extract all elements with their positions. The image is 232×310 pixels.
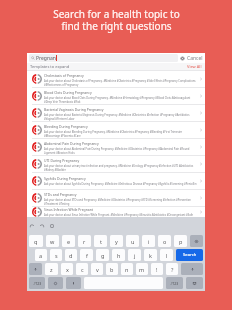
staticText: w [50, 238, 55, 245]
button[interactable]: Emoji [48, 277, 63, 289]
button[interactable]: v [91, 263, 103, 275]
button[interactable]: t [94, 235, 107, 247]
staticText: f [86, 252, 88, 259]
staticText: p [179, 238, 183, 245]
staticText: ? [171, 266, 174, 273]
staticText: Ask your doctor about Bleeding During Pr… [44, 130, 197, 137]
button[interactable]: d [65, 249, 77, 261]
staticText: Ask your doctor about Blood Clots During… [44, 96, 197, 103]
staticText: Ask your doctor about Syphilis During Pr… [44, 182, 197, 186]
staticText: z [50, 266, 53, 273]
button[interactable]: Undo [29, 223, 35, 229]
button[interactable]: Syphilis During Pregnancy [27, 173, 205, 190]
staticText: ! [156, 266, 158, 273]
button[interactable]: b [106, 263, 118, 275]
button[interactable]: Cholestasis of Pregnancy [27, 71, 205, 88]
staticText: Ask your doctor about STDs and Pregnancy… [44, 198, 197, 205]
button[interactable]: Search [176, 249, 203, 261]
button[interactable]: s [50, 249, 62, 261]
staticText: e [67, 238, 71, 245]
button[interactable]: STDs and Pregnancy [27, 190, 205, 207]
button[interactable]: Numbers [166, 277, 183, 289]
button[interactable]: j [128, 249, 141, 261]
button[interactable]: q [29, 235, 43, 247]
staticText: r [83, 238, 86, 245]
staticText: y [115, 238, 118, 245]
staticText: Templates to expand [30, 64, 70, 69]
staticText: Ask your doctor about Bacterial Vaginosi… [44, 113, 197, 120]
button[interactable]: x [61, 263, 73, 275]
staticText: m [139, 266, 145, 273]
staticText: o [163, 238, 167, 245]
button[interactable]: z [45, 263, 58, 275]
button[interactable]: Clear search [180, 56, 185, 61]
staticText: View All [187, 64, 202, 69]
staticText: j [134, 252, 136, 259]
button[interactable]: Backspace [190, 235, 203, 247]
button[interactable]: Redo [39, 223, 45, 229]
staticText: STDs and Pregnancy [44, 192, 77, 197]
button[interactable]: g [96, 249, 109, 261]
staticText: k [149, 252, 152, 259]
button[interactable]: m [136, 263, 148, 275]
staticText: t [100, 238, 102, 245]
staticText: Cholestasis of Pregnancy [44, 73, 84, 78]
staticText: Ask your doctor about Abdominal Pain Dur… [44, 147, 197, 154]
button[interactable]: n [121, 263, 133, 275]
button[interactable]: w [46, 235, 59, 247]
button[interactable]: UTI During Pregnancy [27, 156, 205, 173]
button[interactable]: ? [166, 263, 178, 275]
button[interactable]: l [160, 249, 173, 261]
button[interactable]: Sinus Infection While Pregnant [27, 207, 205, 217]
staticText: Syphilis During Pregnancy [44, 176, 86, 181]
staticText: l [166, 252, 168, 259]
staticText: u [131, 238, 135, 245]
staticText: v [96, 266, 99, 273]
button[interactable]: a [35, 249, 47, 261]
button[interactable]: p [174, 235, 187, 247]
button[interactable]: Voice input [66, 277, 81, 289]
button[interactable]: y [110, 235, 123, 247]
staticText: h [117, 252, 121, 259]
staticText: Search [183, 252, 197, 258]
button[interactable]: Shift [181, 263, 203, 275]
staticText: .?123 [33, 281, 42, 286]
button[interactable]: Paste [49, 223, 55, 229]
button[interactable]: Bleeding During Pregnancy [27, 122, 205, 139]
staticText: b [110, 266, 114, 273]
button[interactable]: Hide keyboard [186, 277, 203, 289]
button[interactable]: Shift [29, 263, 42, 275]
staticText: Abdominal Pain During Pregnancy [44, 141, 99, 146]
staticText: n [125, 266, 129, 273]
staticText: c [81, 266, 84, 273]
button[interactable]: Bacterial Vaginosis During Pregnancy [27, 105, 205, 122]
button[interactable]: h [112, 249, 125, 261]
button[interactable]: Cancel [187, 55, 203, 62]
staticText: Search for a health topic to find the ri… [53, 7, 180, 33]
button[interactable]: e [62, 235, 75, 247]
button[interactable]: i [142, 235, 155, 247]
button[interactable]: Numbers [29, 277, 45, 289]
button[interactable]: Blood Clots During Pregnancy [27, 88, 205, 105]
staticText: d [69, 252, 73, 259]
staticText: Blood Clots During Pregnancy [44, 90, 92, 95]
button[interactable]: r [78, 235, 91, 247]
button[interactable]: ! [151, 263, 163, 275]
button[interactable]: u [126, 235, 139, 247]
button[interactable]: k [144, 249, 157, 261]
button[interactable]: o [158, 235, 171, 247]
staticText: Ask your doctor about Sinus Infection Wh… [44, 213, 197, 217]
staticText: Cancel [187, 55, 203, 62]
staticText: x [66, 266, 69, 273]
button[interactable]: c [76, 263, 88, 275]
button[interactable]: View All [187, 64, 202, 69]
staticText: Sinus Infection While Pregnant [44, 207, 94, 212]
staticText: Pregnan [36, 55, 56, 62]
staticText: UTI During Pregnancy [44, 158, 80, 163]
button[interactable]: Pregnan [29, 54, 178, 62]
button[interactable]: f [80, 249, 93, 261]
staticText: Ask your doctor about urinary tract infe… [44, 164, 197, 171]
button[interactable]: Abdominal Pain During Pregnancy [27, 139, 205, 156]
staticText: .?123 [170, 281, 179, 286]
